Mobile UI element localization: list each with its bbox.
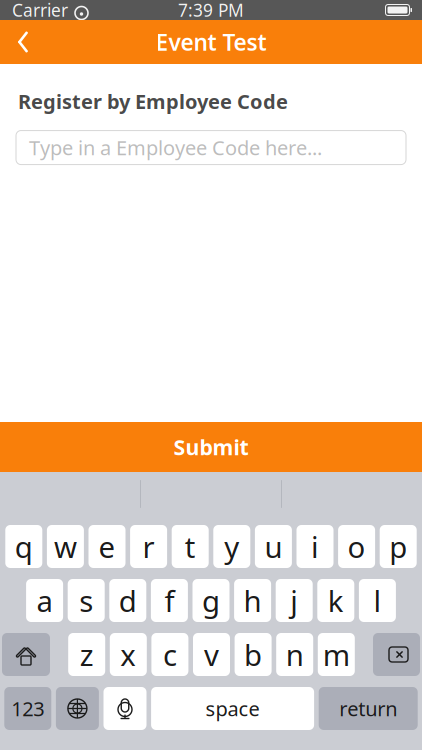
button[interactable]: k	[317, 579, 354, 622]
staticText: Event Test	[155, 27, 266, 57]
staticText: v	[204, 635, 219, 674]
button[interactable]: Back	[0, 20, 46, 64]
staticText: t	[185, 527, 196, 566]
staticText: Submit	[173, 433, 248, 461]
staticText: r	[143, 527, 155, 566]
staticText: f	[164, 581, 174, 620]
button[interactable]: s	[68, 579, 105, 622]
button[interactable]: q	[5, 525, 42, 568]
button[interactable]: t	[172, 525, 209, 568]
button[interactable]: f	[151, 579, 188, 622]
staticText: e	[98, 527, 115, 566]
button[interactable]: c	[151, 633, 188, 676]
button[interactable]: g	[192, 579, 229, 622]
button[interactable]: Type in a Employee Code here...	[16, 131, 406, 165]
button[interactable]: return	[319, 687, 418, 730]
button[interactable]: o	[338, 525, 375, 568]
button[interactable]: u	[255, 525, 292, 568]
button[interactable]: w	[47, 525, 84, 568]
staticText: 123	[11, 695, 44, 722]
staticText: p	[389, 527, 407, 566]
staticText: return	[339, 695, 397, 722]
button[interactable]: h	[234, 579, 271, 622]
button[interactable]: Submit	[0, 422, 422, 472]
staticText: y	[224, 527, 239, 566]
button[interactable]: 123	[4, 687, 51, 730]
button[interactable]: m	[318, 633, 355, 676]
staticText: c	[163, 635, 177, 674]
button[interactable]: Dictation	[103, 687, 146, 730]
button[interactable]: p	[380, 525, 417, 568]
button[interactable]: Next keyboard	[56, 687, 99, 730]
button[interactable]: n	[276, 633, 313, 676]
staticText	[68, 0, 74, 25]
staticText: 7:39 PM	[178, 0, 244, 21]
staticText: x	[120, 635, 136, 674]
staticText: g	[202, 581, 220, 620]
button[interactable]: i	[296, 525, 333, 568]
button[interactable]: l	[359, 579, 396, 622]
staticText: b	[244, 635, 262, 674]
button[interactable]: z	[68, 633, 105, 676]
staticText: w	[54, 527, 77, 566]
button[interactable]: r	[130, 525, 167, 568]
button[interactable]: y	[213, 525, 250, 568]
staticText: n	[286, 635, 304, 674]
button[interactable]: v	[193, 633, 230, 676]
button[interactable]: b	[235, 633, 272, 676]
staticText: z	[80, 635, 94, 674]
button[interactable]: Delete	[373, 633, 420, 676]
staticText: a	[37, 581, 53, 620]
staticText: j	[290, 581, 298, 620]
staticText: k	[328, 581, 344, 620]
staticText: s	[79, 581, 93, 620]
staticText: d	[119, 581, 137, 620]
button[interactable]: e	[88, 525, 125, 568]
button[interactable]: a	[26, 579, 63, 622]
button[interactable]: d	[109, 579, 146, 622]
button[interactable]: space	[151, 687, 314, 730]
staticText: i	[311, 527, 319, 566]
staticText: Carrier	[12, 0, 68, 21]
staticText: m	[323, 635, 350, 674]
button[interactable]: Shift	[2, 633, 50, 676]
staticText: space	[206, 695, 260, 722]
staticText: u	[264, 527, 282, 566]
staticText: l	[373, 581, 381, 620]
staticText: h	[244, 581, 262, 620]
button[interactable]: x	[110, 633, 147, 676]
staticText: q	[15, 527, 33, 566]
button[interactable]: j	[276, 579, 313, 622]
staticText: o	[348, 527, 366, 566]
staticText: Type in a Employee Code here...	[29, 134, 322, 161]
staticText: Register by Employee Code	[18, 88, 288, 115]
